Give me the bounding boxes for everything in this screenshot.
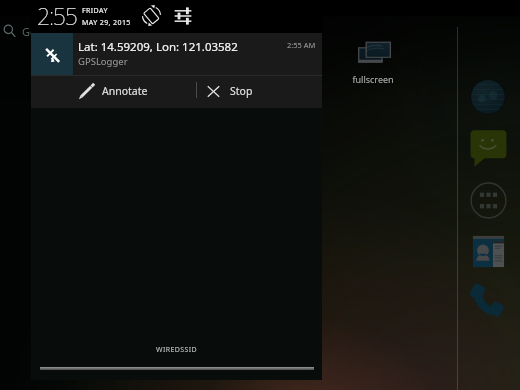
staticText: 2:55 AM xyxy=(287,40,316,50)
button[interactable]: Apps xyxy=(470,182,507,219)
button[interactable]: Messaging xyxy=(469,129,508,168)
button[interactable]: Annotate xyxy=(31,77,196,105)
staticText: Lat: 14.59209, Lon: 121.03582 xyxy=(78,39,238,55)
staticText: 2:55 xyxy=(37,0,77,31)
button[interactable]: fullscreen xyxy=(351,38,395,85)
button[interactable]: Google xyxy=(3,23,123,39)
button[interactable]: People xyxy=(470,233,507,270)
button[interactable]: Quick settings xyxy=(173,6,193,26)
button[interactable]: Stop xyxy=(197,77,322,105)
staticText: FRIDAY xyxy=(82,6,108,16)
staticText: fullscreen xyxy=(352,73,394,85)
button[interactable]: Browser xyxy=(470,79,506,115)
staticText: Stop xyxy=(230,84,253,98)
staticText: GPSLogger xyxy=(78,55,128,68)
staticText: MAY 29, 2015 xyxy=(82,18,131,28)
staticText: Google xyxy=(22,24,60,39)
button[interactable]: Auto-rotate screen xyxy=(141,5,162,26)
button[interactable]: Phone xyxy=(467,282,507,322)
staticText: Annotate xyxy=(102,84,148,98)
staticText: WIREDSSID xyxy=(31,345,322,355)
